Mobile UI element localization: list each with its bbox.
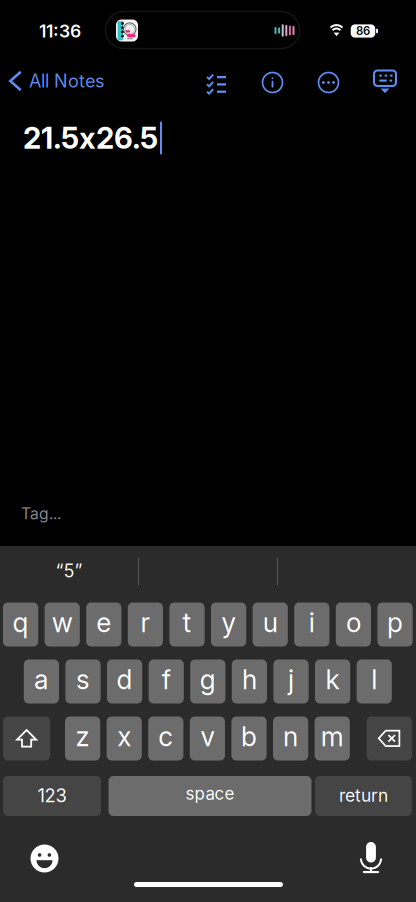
button[interactable]: y	[211, 602, 246, 646]
staticText: c	[158, 720, 173, 753]
staticText: j	[288, 663, 294, 696]
staticText: z	[76, 720, 90, 753]
button[interactable]: Hide Keyboard	[374, 70, 396, 92]
button[interactable]: j	[273, 659, 309, 703]
staticText: b	[241, 720, 257, 753]
button[interactable]: a	[24, 659, 59, 703]
button[interactable]: x	[107, 716, 142, 760]
staticText: 123	[37, 784, 66, 807]
button[interactable]: d	[107, 659, 142, 703]
staticText: f	[162, 663, 171, 696]
button[interactable]: o	[336, 602, 371, 646]
staticText: 21.5x26.5	[23, 120, 158, 156]
button[interactable]: Emoji	[30, 844, 58, 872]
staticText: s	[76, 663, 90, 696]
button[interactable]: k	[315, 659, 350, 703]
button[interactable]: l	[357, 659, 392, 703]
staticText: d	[117, 663, 133, 696]
button[interactable]: g	[190, 659, 225, 703]
staticText: All Notes	[29, 70, 105, 92]
button[interactable]: f	[149, 659, 184, 703]
button[interactable]: s	[65, 659, 101, 703]
staticText: t	[182, 606, 191, 639]
button[interactable]: More	[318, 72, 338, 92]
staticText: k	[326, 663, 340, 696]
button[interactable]: Checklist	[206, 73, 227, 92]
staticText: y	[222, 606, 236, 639]
button[interactable]: e	[86, 602, 121, 646]
staticText: a	[34, 663, 49, 696]
button[interactable]: p	[377, 602, 413, 646]
button[interactable]: i	[294, 602, 329, 646]
button[interactable]: Dictate	[360, 842, 382, 874]
staticText: 11:36	[39, 20, 81, 42]
button[interactable]: t	[169, 602, 205, 646]
button[interactable]: space	[108, 776, 311, 816]
staticText: e	[96, 606, 111, 639]
button[interactable]: Delete	[367, 716, 412, 760]
button[interactable]: r	[128, 602, 163, 646]
button[interactable]: u	[253, 602, 288, 646]
staticText: g	[200, 663, 216, 696]
staticText: space	[185, 783, 234, 804]
button[interactable]: v	[190, 716, 225, 760]
button[interactable]: Shift	[3, 716, 50, 760]
staticText: w	[52, 606, 73, 639]
button[interactable]: b	[231, 716, 267, 760]
button[interactable]: m	[315, 716, 350, 760]
button[interactable]: q	[3, 602, 38, 646]
button[interactable]: “5”	[0, 557, 138, 585]
button[interactable]: w	[45, 602, 80, 646]
staticText: Tag...	[21, 504, 61, 523]
staticText: o	[346, 606, 361, 639]
button[interactable]: c	[148, 716, 183, 760]
staticText: x	[117, 720, 131, 753]
staticText: n	[283, 720, 298, 753]
staticText: r	[140, 606, 150, 639]
button[interactable]: 123	[3, 776, 101, 816]
staticText: l	[371, 663, 377, 696]
button[interactable]: return	[315, 776, 412, 816]
staticText: 86	[356, 24, 370, 38]
staticText: v	[200, 720, 214, 753]
button[interactable]: h	[232, 659, 267, 703]
staticText: h	[242, 663, 257, 696]
staticText: m	[321, 720, 344, 753]
staticText: return	[339, 785, 388, 806]
button[interactable]: z	[65, 716, 100, 760]
button[interactable]: All Notes	[9, 70, 129, 92]
staticText: p	[387, 606, 403, 639]
staticText: q	[13, 606, 29, 639]
staticText: i	[309, 606, 315, 639]
staticText: u	[263, 606, 278, 639]
button[interactable]: Info	[262, 72, 282, 92]
staticText: “5”	[55, 560, 82, 582]
button[interactable]: n	[273, 716, 308, 760]
